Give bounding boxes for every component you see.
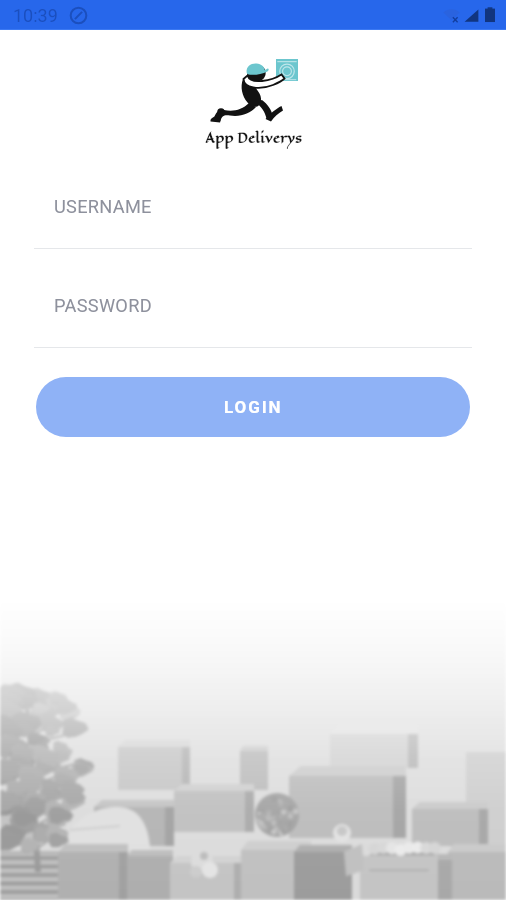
button[interactable]: LOGIN [36, 377, 470, 437]
button[interactable]: PASSWORD [34, 293, 472, 348]
staticText: USERNAME [54, 196, 152, 217]
staticText: App Deliverys [205, 128, 302, 148]
staticText: PASSWORD [54, 295, 152, 316]
button[interactable]: USERNAME [34, 194, 472, 249]
staticText: 10:39 [13, 5, 58, 26]
staticText: LOGIN [224, 397, 283, 417]
other: Do not disturb [70, 7, 87, 24]
